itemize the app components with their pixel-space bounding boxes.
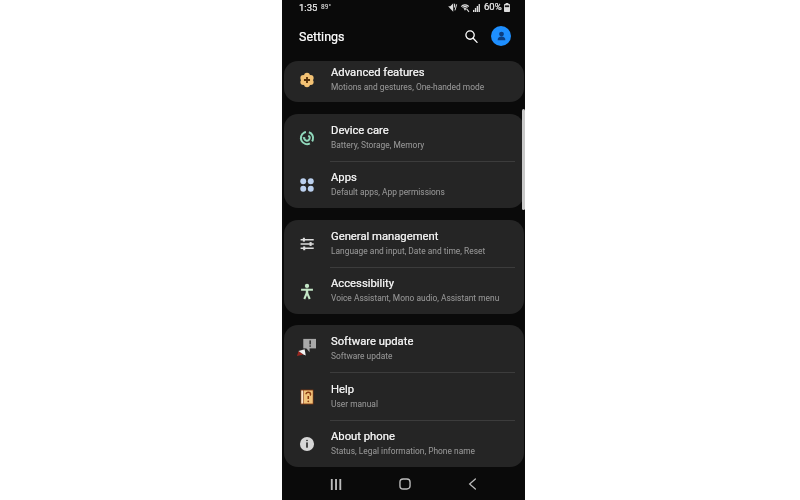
- button[interactable]: Software update: [284, 325, 524, 372]
- staticText: Settings: [299, 29, 345, 44]
- staticText: Help: [331, 383, 355, 396]
- button[interactable]: Account: [491, 26, 511, 46]
- button[interactable]: Search: [461, 26, 481, 46]
- button[interactable]: Home: [390, 469, 420, 499]
- staticText: Software update: [331, 351, 393, 361]
- staticText: Device care: [331, 124, 389, 137]
- staticText: 60%: [484, 1, 502, 12]
- staticText: Voice Assistant, Mono audio, Assistant m…: [331, 293, 500, 303]
- staticText: Accessibility: [331, 277, 394, 290]
- staticText: About phone: [331, 430, 395, 443]
- button[interactable]: Advanced features: [284, 61, 524, 102]
- staticText: Motions and gestures, One-handed mode: [331, 82, 485, 92]
- staticText: 1:35: [299, 2, 318, 13]
- staticText: General management: [331, 230, 439, 243]
- button[interactable]: About phone: [284, 421, 524, 467]
- staticText: Advanced features: [331, 66, 425, 79]
- button[interactable]: Recents: [321, 469, 351, 499]
- button[interactable]: Help: [284, 373, 524, 420]
- staticText: Battery, Storage, Memory: [331, 140, 425, 150]
- button[interactable]: Device care: [284, 114, 524, 161]
- staticText: Status, Legal information, Phone name: [331, 446, 476, 456]
- staticText: Default apps, App permissions: [331, 187, 445, 197]
- staticText: Language and input, Date and time, Reset: [331, 246, 486, 256]
- button[interactable]: Back: [457, 469, 487, 499]
- staticText: Software update: [331, 335, 414, 348]
- staticText: 89°: [321, 3, 331, 11]
- button[interactable]: Apps: [284, 162, 524, 208]
- staticText: Apps: [331, 171, 357, 184]
- staticText: User manual: [331, 399, 378, 409]
- button[interactable]: Accessibility: [284, 268, 524, 314]
- button[interactable]: General management: [284, 220, 524, 267]
